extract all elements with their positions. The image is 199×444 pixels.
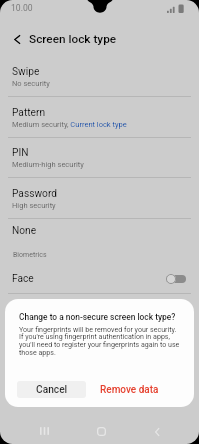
button[interactable]: PIN <box>0 137 199 177</box>
button[interactable]: Home <box>87 420 115 443</box>
button[interactable]: Navigate up <box>5 28 27 50</box>
button[interactable]: Swipe <box>0 56 199 96</box>
staticText: Swipe <box>12 66 40 78</box>
button[interactable]: Pattern <box>0 97 199 137</box>
button[interactable]: Recents <box>30 420 60 443</box>
button[interactable]: Cancel <box>17 381 86 398</box>
staticText: 10.00 <box>11 3 33 13</box>
staticText: Medium security, Current lock type <box>12 120 127 129</box>
staticText: Biometrics <box>13 251 47 259</box>
staticText: No security <box>12 79 50 88</box>
button[interactable]: Password <box>0 178 199 218</box>
staticText: PIN <box>12 147 29 159</box>
staticText: None <box>12 225 37 237</box>
staticText: Change to a non-secure screen lock type? <box>19 312 176 322</box>
staticText: Your fingerprints will be removed for yo… <box>19 325 180 357</box>
button[interactable]: Back <box>145 420 173 443</box>
staticText: Face <box>12 273 166 285</box>
staticText: Screen lock type <box>29 32 117 46</box>
staticText: Pattern <box>12 107 46 119</box>
button[interactable]: Face <box>0 265 199 293</box>
button[interactable]: None <box>0 218 199 244</box>
staticText: Medium-high security <box>12 160 84 169</box>
staticText: Remove data <box>100 384 159 396</box>
staticText: High security <box>12 201 56 210</box>
staticText: Cancel <box>36 384 68 396</box>
staticText: Password <box>12 188 57 200</box>
button[interactable]: Remove data <box>95 381 164 398</box>
